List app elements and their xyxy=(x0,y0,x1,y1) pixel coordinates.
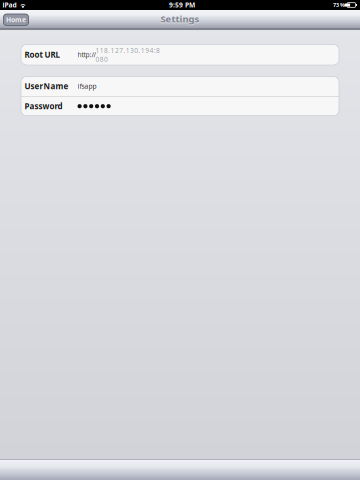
staticText: 9:59 PM xyxy=(169,1,195,9)
staticText: ifsapp xyxy=(77,82,96,91)
staticText: Settings xyxy=(160,13,199,26)
staticText: 118.127.130.194:8080 xyxy=(95,46,160,64)
staticText: http:// xyxy=(77,50,95,59)
staticText: Password xyxy=(24,101,62,111)
staticText: iPad xyxy=(2,1,16,9)
staticText: Settings xyxy=(160,13,199,25)
staticText: Home xyxy=(6,15,26,24)
button[interactable]: Home xyxy=(3,14,28,25)
staticText: 73 % xyxy=(333,1,345,9)
staticText: Root URL xyxy=(24,49,59,60)
staticText: UserName xyxy=(24,81,68,91)
